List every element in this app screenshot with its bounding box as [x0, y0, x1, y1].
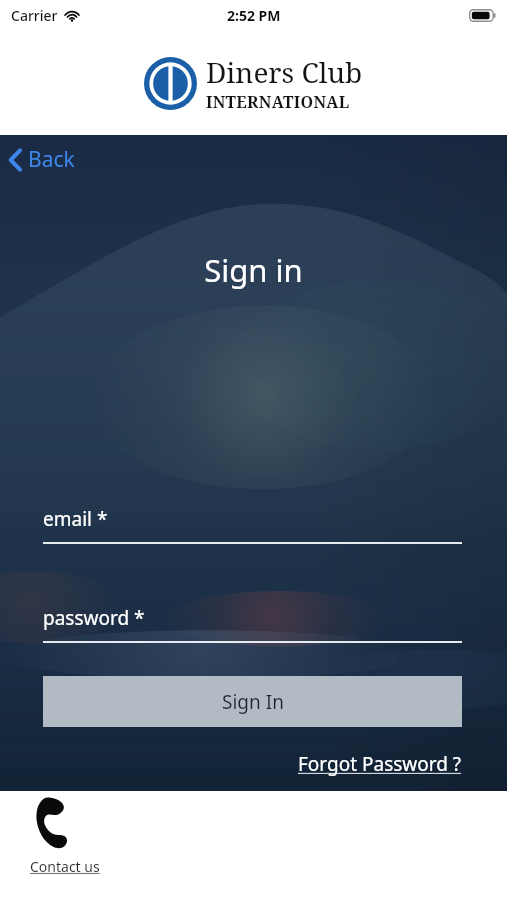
button[interactable]: Forgot Password ?: [298, 751, 462, 777]
button[interactable]: Contact us by phone: [0, 791, 118, 882]
staticText: password *: [43, 605, 145, 631]
button[interactable]: Sign In: [43, 676, 462, 727]
staticText: Contact us: [30, 857, 100, 876]
staticText: Carrier: [11, 6, 58, 25]
staticText: 2:52 PM: [227, 6, 281, 25]
other: Contact us by phone: [30, 797, 78, 845]
staticText: INTERNATIONAL: [206, 91, 350, 113]
staticText: email *: [43, 506, 108, 532]
staticText: Back: [28, 145, 75, 174]
staticText: Diners Club: [206, 53, 363, 91]
staticText: Sign In: [222, 689, 284, 715]
other: Diners Club logo: [144, 57, 197, 110]
button[interactable]: Back: [0, 139, 89, 180]
staticText: Sign in: [0, 249, 507, 291]
